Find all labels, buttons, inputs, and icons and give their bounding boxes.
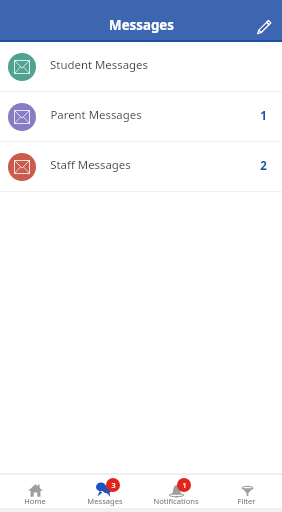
button[interactable]: Staff Messages	[0, 142, 282, 191]
staticText: 1	[182, 480, 187, 490]
button[interactable]: Student Messages	[0, 42, 282, 91]
button[interactable]: 1	[140, 475, 211, 508]
staticText: 2	[260, 158, 267, 174]
staticText: Filter	[237, 496, 256, 506]
staticText: Home	[24, 496, 46, 506]
button[interactable]: 3	[70, 475, 140, 508]
staticText: 1	[260, 108, 267, 124]
staticText: Parent Messages	[50, 107, 142, 123]
button[interactable]: Compose message	[249, 11, 277, 39]
staticText: 3	[111, 480, 116, 490]
staticText: Messages	[109, 16, 174, 34]
button[interactable]: Home	[0, 475, 70, 508]
button[interactable]: Filter	[211, 475, 282, 508]
staticText: Staff Messages	[50, 157, 131, 173]
staticText: Student Messages	[50, 57, 148, 73]
staticText: Messages	[87, 496, 123, 506]
staticText: Notifications	[153, 496, 199, 506]
button[interactable]: Parent Messages	[0, 92, 282, 141]
